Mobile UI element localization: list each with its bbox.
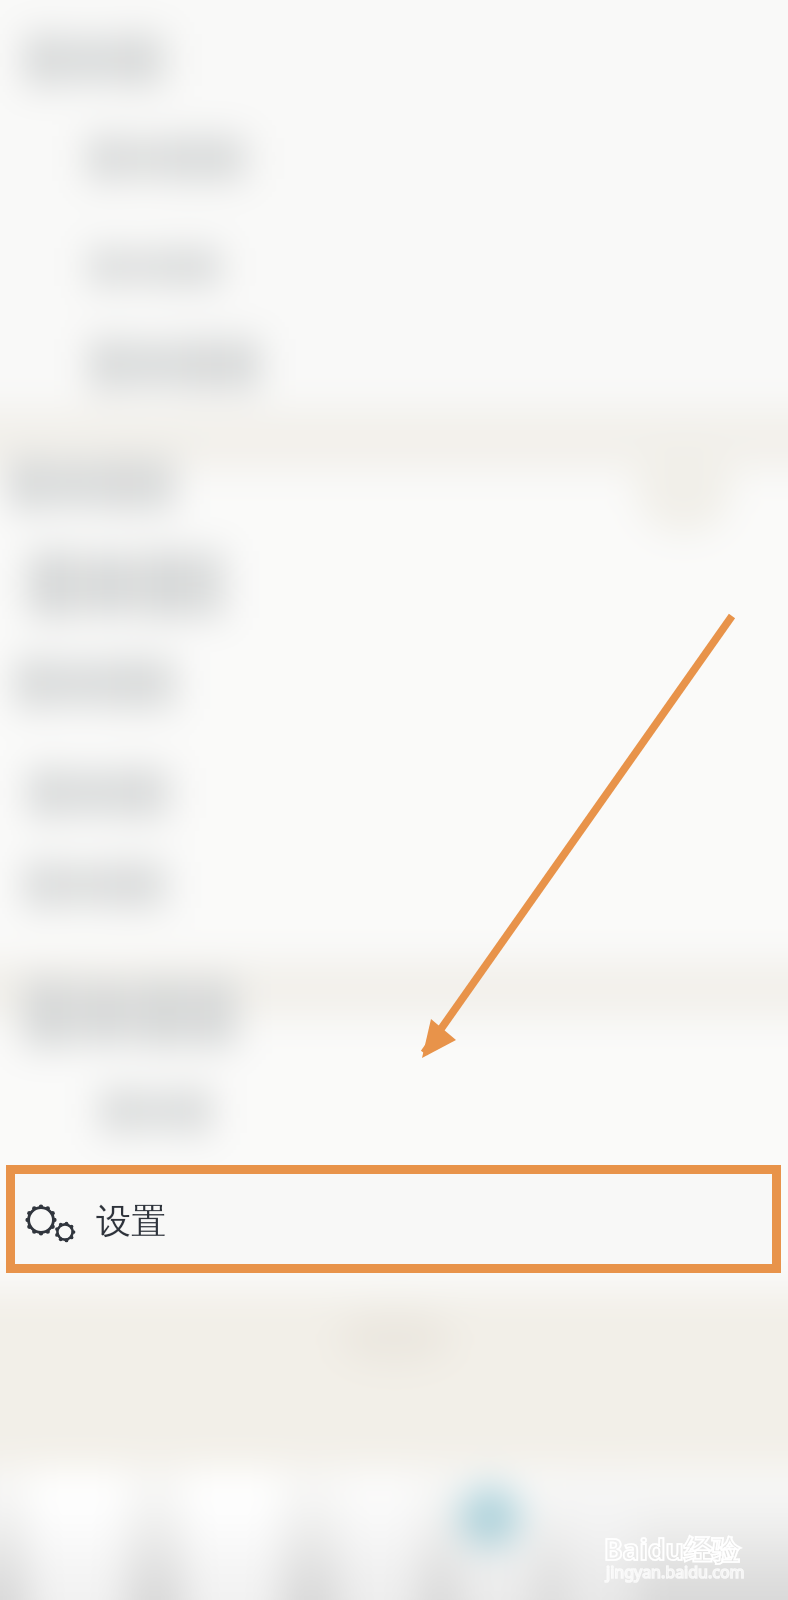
staticText: 设置 <box>96 1199 166 1243</box>
button[interactable]: Settings <box>15 1174 772 1264</box>
staticText: Baidu经验 <box>604 1530 740 1568</box>
staticText: jingyan.baidu.com <box>606 1561 745 1583</box>
other: Settings <box>15 1174 772 1264</box>
